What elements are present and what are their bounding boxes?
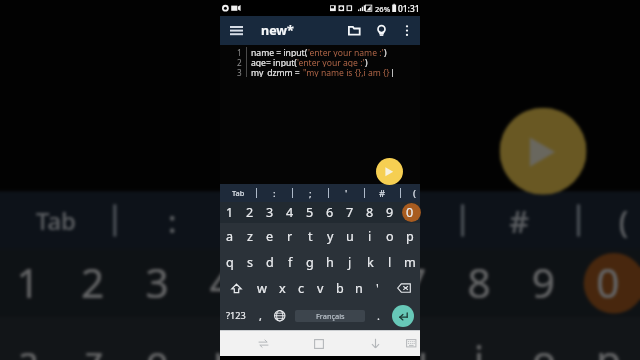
button[interactable]: 9 bbox=[380, 202, 400, 223]
button[interactable]: p bbox=[577, 317, 640, 360]
button[interactable]: d bbox=[260, 249, 280, 275]
button[interactable]: r bbox=[280, 223, 300, 249]
button[interactable]: ' bbox=[337, 184, 355, 202]
button[interactable] bbox=[548, 191, 606, 249]
button[interactable]: 7 bbox=[340, 202, 360, 223]
button[interactable]: ' bbox=[368, 275, 387, 301]
button[interactable]: z bbox=[62, 317, 126, 360]
button[interactable]: l bbox=[380, 249, 400, 275]
button[interactable]: Hide keyboard bbox=[347, 331, 403, 356]
button[interactable]: 9 bbox=[512, 249, 577, 317]
button[interactable]: e bbox=[126, 317, 190, 360]
button[interactable]: i bbox=[448, 317, 512, 360]
button[interactable]: h bbox=[320, 249, 340, 275]
button[interactable]: i bbox=[360, 223, 380, 249]
button[interactable]: 6 bbox=[319, 249, 384, 317]
button[interactable]: m bbox=[400, 249, 420, 275]
button[interactable]: n bbox=[349, 275, 368, 301]
button[interactable]: ; bbox=[258, 191, 316, 249]
button[interactable]: 2 bbox=[240, 202, 260, 223]
button[interactable]: o bbox=[380, 223, 400, 249]
button[interactable]: q bbox=[220, 249, 240, 275]
button[interactable]: k bbox=[360, 249, 380, 275]
button[interactable]: 5 bbox=[255, 249, 319, 317]
button[interactable] bbox=[355, 184, 373, 202]
button[interactable]: Tab bbox=[229, 184, 247, 202]
button[interactable]: Run bbox=[500, 108, 586, 195]
button[interactable]: o bbox=[512, 317, 577, 360]
button[interactable]: 4 bbox=[190, 249, 255, 317]
button[interactable]: ?123 bbox=[220, 301, 251, 330]
button[interactable]: Home bbox=[291, 331, 347, 356]
button[interactable]: e bbox=[260, 223, 280, 249]
button[interactable]: , bbox=[251, 301, 270, 330]
staticText: ' bbox=[345, 187, 348, 200]
button[interactable]: 1 bbox=[0, 249, 62, 317]
button[interactable]: ; bbox=[301, 184, 319, 202]
button[interactable]: 3 bbox=[126, 249, 190, 317]
button[interactable]: c bbox=[292, 275, 311, 301]
button[interactable]: y bbox=[320, 223, 340, 249]
button[interactable]: Enter bbox=[386, 301, 420, 330]
button[interactable]: . bbox=[370, 301, 386, 330]
button[interactable] bbox=[316, 191, 374, 249]
button[interactable]: s bbox=[240, 249, 260, 275]
button[interactable]: g bbox=[300, 249, 320, 275]
button[interactable]: Hints bbox=[369, 16, 393, 45]
button[interactable]: # bbox=[373, 184, 391, 202]
button[interactable]: a bbox=[0, 317, 62, 360]
button[interactable] bbox=[283, 184, 301, 202]
button[interactable]: y bbox=[319, 317, 384, 360]
button[interactable]: 3 bbox=[260, 202, 280, 223]
button[interactable]: Tab bbox=[26, 191, 84, 249]
button[interactable]: : bbox=[142, 191, 200, 249]
staticText: ' bbox=[400, 201, 409, 243]
button[interactable]: Backspace bbox=[387, 275, 420, 301]
button[interactable]: u bbox=[340, 223, 360, 249]
button[interactable]: 4 bbox=[280, 202, 300, 223]
button[interactable]: # bbox=[490, 191, 548, 249]
button[interactable]: b bbox=[330, 275, 349, 301]
button[interactable]: 2 bbox=[62, 249, 126, 317]
button[interactable]: Shift bbox=[220, 275, 252, 301]
button[interactable]: Run bbox=[376, 158, 403, 185]
button[interactable]: ( bbox=[409, 184, 420, 202]
button[interactable]: w bbox=[252, 275, 272, 301]
button[interactable] bbox=[391, 184, 409, 202]
button[interactable]: z bbox=[240, 223, 260, 249]
button[interactable]: ( bbox=[606, 191, 640, 249]
button[interactable]: : bbox=[265, 184, 283, 202]
button[interactable] bbox=[84, 191, 142, 249]
button[interactable]: 0 bbox=[400, 202, 420, 223]
button[interactable] bbox=[247, 184, 265, 202]
button[interactable]: u bbox=[384, 317, 448, 360]
button[interactable]: Switch keyboard bbox=[403, 331, 420, 356]
button[interactable]: Menu bbox=[220, 16, 252, 45]
button[interactable]: Recents bbox=[235, 331, 291, 356]
button[interactable]: v bbox=[311, 275, 330, 301]
button[interactable]: More options bbox=[397, 16, 417, 45]
button[interactable] bbox=[200, 191, 258, 249]
button[interactable]: Open file bbox=[342, 16, 366, 45]
button[interactable]: f bbox=[280, 249, 300, 275]
button[interactable]: t bbox=[255, 317, 319, 360]
button[interactable]: ' bbox=[374, 191, 432, 249]
button[interactable]: p bbox=[400, 223, 420, 249]
button[interactable]: 8 bbox=[360, 202, 380, 223]
button[interactable] bbox=[432, 191, 490, 249]
button[interactable]: x bbox=[272, 275, 292, 301]
button[interactable]: Français bbox=[295, 310, 365, 322]
button[interactable]: 6 bbox=[320, 202, 340, 223]
button[interactable]: 0 bbox=[577, 249, 640, 317]
button[interactable]: j bbox=[340, 249, 360, 275]
staticText: j bbox=[348, 254, 352, 271]
button[interactable] bbox=[319, 184, 337, 202]
button[interactable]: Change language bbox=[270, 301, 290, 330]
button[interactable]: a bbox=[220, 223, 240, 249]
button[interactable]: 8 bbox=[448, 249, 512, 317]
button[interactable]: 5 bbox=[300, 202, 320, 223]
button[interactable]: 7 bbox=[384, 249, 448, 317]
button[interactable]: r bbox=[190, 317, 255, 360]
button[interactable]: t bbox=[300, 223, 320, 249]
button[interactable]: 1 bbox=[220, 202, 240, 223]
